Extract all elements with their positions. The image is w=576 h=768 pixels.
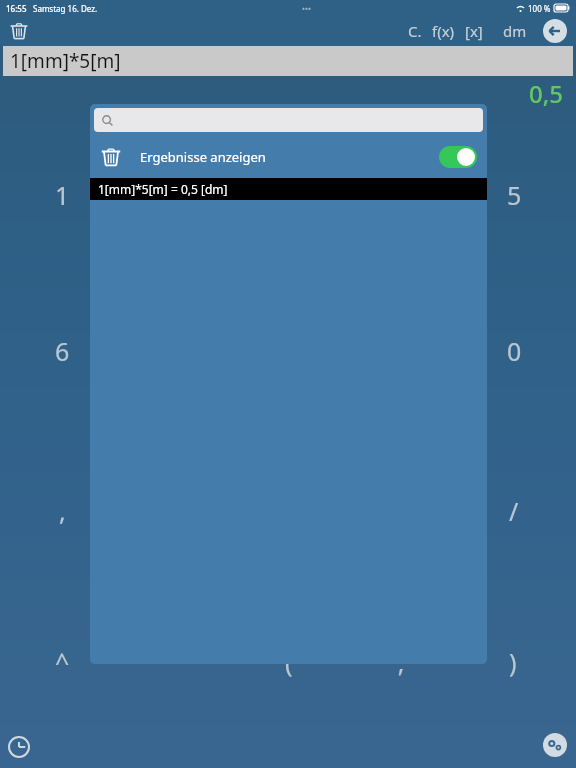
staticText: ( bbox=[285, 645, 293, 679]
staticText: 100 % bbox=[528, 3, 551, 14]
staticText: ^ bbox=[55, 645, 70, 679]
staticText: ) bbox=[509, 645, 517, 679]
button[interactable]: ( bbox=[263, 640, 315, 684]
staticText: Ergebnisse anzeigen bbox=[140, 148, 266, 166]
button[interactable] bbox=[94, 108, 483, 132]
button[interactable]: History bbox=[4, 732, 34, 762]
button[interactable]: ^ bbox=[36, 640, 88, 684]
staticText: C. bbox=[408, 21, 422, 41]
button[interactable] bbox=[439, 146, 477, 168]
staticText: Samstag 16. Dez. bbox=[33, 3, 98, 14]
staticText: 1[mm]*5[m] = 0,5 [dm] bbox=[98, 181, 228, 197]
button[interactable]: Back bbox=[542, 18, 568, 44]
staticText: / bbox=[509, 494, 519, 528]
button[interactable]: C. bbox=[405, 18, 425, 44]
staticText: 0 bbox=[507, 334, 522, 368]
button[interactable]: , bbox=[36, 489, 88, 533]
button[interactable]: ; bbox=[375, 640, 427, 684]
button[interactable]: / bbox=[488, 489, 540, 533]
button[interactable]: 1 bbox=[36, 173, 88, 217]
button[interactable]: f(x) bbox=[429, 18, 458, 44]
button[interactable]: [x] bbox=[462, 18, 486, 44]
staticText: 1[mm]*5[m] bbox=[10, 48, 121, 74]
staticText: [x] bbox=[465, 21, 483, 41]
button[interactable]: 6 bbox=[36, 329, 88, 373]
staticText: f(x) bbox=[432, 21, 455, 41]
button[interactable]: dm bbox=[500, 18, 530, 44]
button[interactable]: Clear bbox=[4, 16, 34, 46]
staticText: , bbox=[59, 494, 66, 528]
button[interactable]: Settings bbox=[540, 730, 570, 760]
button[interactable]: Ergebnisse anzeigen bbox=[90, 136, 487, 178]
staticText: dm bbox=[503, 21, 527, 41]
button[interactable]: 1[mm]*5[m] = 0,5 [dm] bbox=[90, 178, 487, 200]
staticText: 5 bbox=[507, 178, 522, 212]
staticText: ••• bbox=[302, 3, 312, 14]
button[interactable]: 1[mm]*5[m] bbox=[3, 46, 573, 76]
button[interactable]: ) bbox=[487, 640, 539, 684]
button[interactable]: 0 bbox=[488, 329, 540, 373]
staticText: ; bbox=[398, 645, 405, 679]
staticText: 1 bbox=[55, 178, 70, 212]
staticText: 6 bbox=[55, 334, 70, 368]
staticText: 0,5 bbox=[529, 77, 564, 110]
staticText: 16:55 bbox=[6, 3, 27, 14]
button[interactable]: 5 bbox=[488, 173, 540, 217]
